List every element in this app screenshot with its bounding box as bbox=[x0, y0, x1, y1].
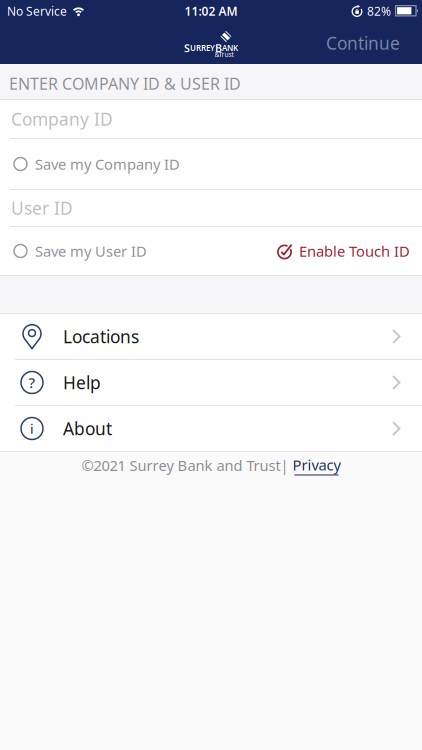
staticText: Enable Touch ID bbox=[299, 241, 410, 261]
staticText: Save my User ID bbox=[35, 241, 147, 261]
staticText: ? bbox=[28, 373, 35, 392]
button[interactable]: Locations bbox=[0, 314, 422, 359]
button[interactable]: Continue bbox=[326, 31, 422, 54]
staticText: &Trust bbox=[214, 50, 233, 59]
staticText: URREY bbox=[190, 43, 215, 53]
staticText: Save my Company ID bbox=[35, 154, 180, 174]
staticText: ENTER COMPANY ID & USER ID bbox=[9, 73, 241, 94]
button[interactable]: Enable Touch ID bbox=[277, 241, 410, 261]
staticText: No Service bbox=[7, 3, 67, 19]
staticText: i bbox=[30, 420, 34, 437]
staticText: 82% bbox=[367, 3, 391, 19]
staticText: About bbox=[63, 417, 112, 440]
staticText: ANK bbox=[222, 43, 238, 53]
staticText: ©2021 Surrey Bank and Trust| bbox=[81, 455, 292, 475]
staticText: Company ID bbox=[11, 107, 113, 130]
staticText: S bbox=[184, 41, 190, 55]
staticText: User ID bbox=[11, 196, 73, 219]
staticText: 11:02 AM bbox=[184, 3, 237, 19]
staticText: B bbox=[215, 41, 222, 55]
button[interactable]: Save my User ID bbox=[14, 241, 147, 261]
button[interactable]: Privacy bbox=[292, 455, 340, 475]
button[interactable]: Save my Company ID bbox=[0, 139, 422, 189]
staticText: Help bbox=[63, 371, 101, 394]
button[interactable]: i bbox=[0, 406, 422, 451]
button[interactable]: ? bbox=[0, 360, 422, 405]
staticText: Continue bbox=[326, 31, 400, 54]
staticText: Privacy bbox=[292, 455, 340, 474]
staticText: Locations bbox=[63, 325, 139, 348]
